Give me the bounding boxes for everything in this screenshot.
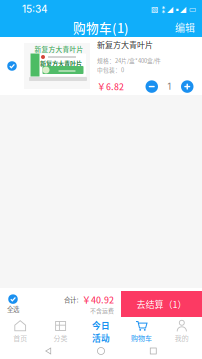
staticText: 规格：24片/盒*400盒/件 [97,56,161,64]
button[interactable]: 去结算（1） [121,291,202,317]
staticText: 15:34 [22,3,48,15]
staticText: 新复方大青叶片 [40,59,82,67]
staticText: 1 [167,81,171,92]
button[interactable]: 我的 [162,320,202,343]
staticText: 合计： [64,295,82,304]
button[interactable]: 今日活动 [81,320,121,343]
staticText: ￥40.92 [82,293,114,306]
button[interactable]: 首页 [0,320,40,343]
staticText: 不含运费 [90,306,114,315]
staticText: 我的 [175,333,189,343]
staticText: 购物车 [131,333,152,343]
staticText: 活动 [92,331,110,344]
staticText: 新复方大青叶片 [97,39,153,50]
staticText: 购物车(1) [73,18,129,37]
staticText: ▧ ⁑ ◢ ▪◢ ▭ [151,4,197,14]
staticText: 今日 [92,319,110,331]
staticText: 全选 [7,304,19,314]
staticText: 首页 [13,333,27,343]
button[interactable]: 编辑 [168,17,202,38]
staticText: 分类 [54,333,68,343]
button[interactable]: 购物车 [121,320,162,343]
staticText: 编辑 [175,20,195,35]
button[interactable]: 减少数量 [145,80,158,93]
button[interactable]: 分类 [40,320,81,343]
button[interactable]: 选择商品 [0,41,24,91]
staticText: ￥6.82 [97,80,124,93]
button[interactable]: 增加数量 [180,80,194,93]
staticText: 中包装：0 [97,65,124,74]
staticText: 去结算（1） [136,297,186,310]
staticText: 新复方大青叶片 [34,44,83,54]
button[interactable]: 全选 [0,288,26,320]
